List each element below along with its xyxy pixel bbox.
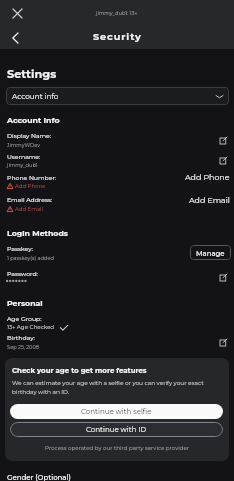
staticText: Username: [7, 153, 41, 160]
staticText: Security [93, 31, 142, 43]
staticText: jimmy_dub1: 13+ [96, 10, 138, 16]
staticText: birthday with an ID. [12, 388, 69, 395]
staticText: Birthday: [7, 334, 35, 341]
staticText: Passkey: [7, 245, 33, 252]
staticText: Continue with ID [86, 425, 147, 434]
staticText: Age Group: [7, 315, 42, 322]
button[interactable]: Continue with ID [10, 422, 223, 437]
staticText: Email Address: [7, 196, 53, 203]
staticText: JimmyWDev [7, 142, 40, 148]
button[interactable]: Add Phone [183, 170, 232, 184]
staticText: Account Info [7, 115, 60, 125]
staticText: Settings [7, 67, 57, 81]
staticText: jimmy_dub1 [7, 162, 38, 168]
button[interactable]: Manage [190, 245, 231, 260]
staticText: Password: [7, 270, 38, 277]
staticText: Phone Number: [7, 174, 57, 181]
button[interactable]: Edit Birthday [216, 335, 230, 349]
staticText: Personal [7, 298, 43, 308]
staticText: Gender (Optional) [7, 473, 71, 481]
staticText: Account info [12, 92, 59, 101]
button[interactable]: Close [8, 4, 26, 22]
staticText: Process operated by our third party serv… [45, 445, 190, 452]
staticText: 13+ Age Checked [7, 324, 55, 331]
staticText: Add Email [15, 206, 43, 213]
staticText: Sep 25, 2008 [7, 344, 40, 350]
button[interactable]: Add Email [187, 193, 232, 207]
staticText: Check your age to get more features [12, 366, 147, 375]
staticText: Login Methods [7, 228, 69, 238]
button[interactable]: Continue with selfie [10, 404, 223, 419]
staticText: Manage [196, 249, 225, 257]
staticText: Add Phone [185, 172, 230, 182]
staticText: Continue with selfie [81, 407, 152, 416]
button[interactable]: Account info [6, 87, 229, 105]
button[interactable]: Edit Display Name [216, 133, 230, 147]
staticText: Display Name: [7, 132, 52, 139]
staticText: We can estimate your age with a selfie o… [12, 379, 204, 386]
button[interactable]: Edit Password [216, 270, 230, 284]
staticText: 1 passkey(s) added [7, 255, 54, 261]
staticText: Add Phone [15, 183, 46, 190]
button[interactable]: Edit Username [216, 153, 230, 167]
button[interactable]: Back [6, 29, 24, 47]
staticText: Add Email [189, 195, 230, 205]
